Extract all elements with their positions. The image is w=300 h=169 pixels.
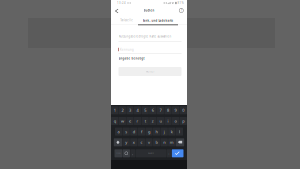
button[interactable]: i	[164, 117, 172, 125]
button[interactable]: 5	[142, 106, 149, 114]
button[interactable]: g	[145, 128, 153, 136]
staticText: 7	[159, 108, 161, 113]
button[interactable]: 1	[111, 106, 118, 114]
button[interactable]: Tankstelle	[120, 17, 134, 23]
button[interactable]: h	[153, 128, 160, 136]
staticText: 2	[121, 108, 123, 113]
staticText: 4	[137, 108, 139, 113]
staticText: 13:24	[117, 1, 126, 5]
staticText: z	[152, 118, 154, 124]
staticText: m	[170, 140, 174, 145]
staticText: Tankstelle	[120, 18, 133, 22]
button[interactable]: Tank- und Ladekarte	[138, 15, 178, 24]
staticText: 1	[114, 108, 116, 113]
staticText: l	[179, 129, 180, 134]
staticText: x	[133, 140, 135, 145]
staticText: t	[145, 118, 146, 124]
staticText: e	[129, 118, 131, 124]
button[interactable]: n	[161, 138, 168, 146]
button[interactable]: ?123	[114, 149, 122, 157]
button[interactable]: Backspace	[176, 138, 184, 146]
button[interactable]: Shift	[114, 138, 122, 146]
staticText: k	[171, 129, 173, 134]
staticText: Kennung	[120, 48, 134, 51]
staticText: 8	[167, 108, 169, 113]
button[interactable]: r	[134, 117, 141, 125]
staticText: Buchen	[143, 9, 154, 12]
button[interactable]: Back	[111, 6, 122, 15]
staticText: ?123	[116, 152, 120, 154]
button[interactable]: k	[168, 128, 175, 136]
button[interactable]: Emoji keyboard	[123, 149, 130, 157]
staticText: u	[159, 118, 161, 124]
staticText: 3	[129, 108, 131, 113]
button[interactable]: l	[176, 128, 183, 136]
button[interactable]: v	[145, 138, 153, 146]
button[interactable]: Deutsch	[136, 149, 166, 157]
button[interactable]: u	[157, 117, 164, 125]
button[interactable]: c	[138, 138, 145, 146]
button[interactable]: Enter	[172, 149, 183, 157]
staticText: r	[137, 118, 139, 124]
staticText: n	[163, 140, 165, 145]
staticText: Tank- und Ladekarte	[142, 19, 173, 22]
button[interactable]: 3	[126, 106, 134, 114]
staticText: ?	[181, 9, 182, 12]
button[interactable]: f	[138, 128, 145, 136]
staticText: 81%	[177, 1, 183, 5]
button[interactable]: Help	[175, 6, 187, 15]
staticText: .	[168, 151, 169, 155]
staticText: c	[140, 140, 142, 145]
staticText: 0	[182, 108, 184, 113]
button[interactable]: z	[149, 117, 156, 125]
staticText: v	[148, 140, 150, 145]
staticText: j	[164, 129, 165, 134]
button[interactable]: 2	[119, 106, 126, 114]
button[interactable]: .	[166, 149, 171, 157]
staticText: Nutzungsberechtigte Karte auswählen	[118, 35, 171, 38]
button[interactable]: j	[161, 128, 168, 136]
button[interactable]: e	[126, 117, 134, 125]
button[interactable]: b	[153, 138, 160, 146]
staticText: Weiter	[145, 70, 154, 73]
button[interactable]: y	[123, 138, 130, 146]
staticText: a	[118, 129, 120, 134]
button[interactable]: 7	[157, 106, 164, 114]
button[interactable]: p	[180, 117, 187, 125]
button[interactable]: d	[130, 128, 137, 136]
staticText: f	[141, 129, 142, 134]
button[interactable]: 0	[180, 106, 187, 114]
button[interactable]: 9	[172, 106, 179, 114]
button[interactable]: m	[168, 138, 175, 146]
staticText: q	[114, 118, 116, 124]
staticText: b	[156, 140, 158, 145]
staticText: s	[125, 129, 127, 134]
staticText: g	[148, 129, 150, 134]
staticText: d	[133, 129, 135, 134]
button[interactable]: t	[142, 117, 149, 125]
button[interactable]: ,	[130, 149, 135, 157]
button[interactable]: x	[130, 138, 137, 146]
staticText: w	[121, 118, 124, 124]
staticText: ,	[132, 151, 133, 155]
staticText: p	[182, 118, 184, 124]
staticText: h	[156, 129, 158, 134]
staticText: 9	[175, 108, 177, 113]
button[interactable]: 4	[134, 106, 141, 114]
staticText: 6	[152, 108, 154, 113]
button[interactable]: o	[172, 117, 179, 125]
staticText: 5	[144, 108, 146, 113]
button[interactable]: a	[115, 128, 122, 136]
staticText: Eingabe benötigt	[118, 57, 144, 60]
staticText: y	[125, 140, 127, 145]
button[interactable]: 8	[164, 106, 172, 114]
staticText: o	[175, 118, 177, 124]
button[interactable]: q	[111, 117, 118, 125]
button[interactable]: 6	[149, 106, 156, 114]
staticText: Deutsch	[148, 152, 154, 154]
button[interactable]: w	[119, 117, 126, 125]
button[interactable]: s	[123, 128, 130, 136]
